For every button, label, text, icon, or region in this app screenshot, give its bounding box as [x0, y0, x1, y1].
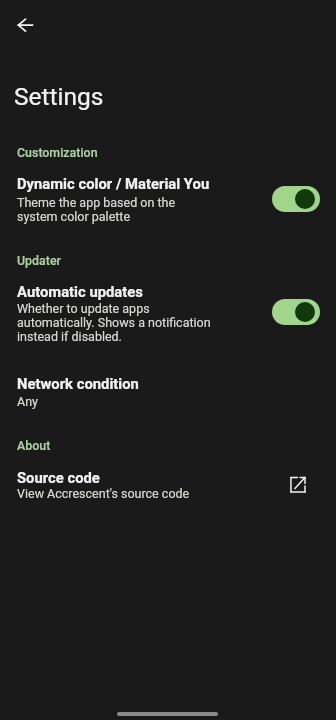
button[interactable]: Network condition	[0, 371, 336, 413]
staticText: Network condition	[17, 375, 139, 392]
staticText: Dynamic color / Material You	[17, 175, 210, 192]
staticText: Theme the app based on the system color …	[17, 196, 176, 224]
staticText: Automatic updates	[17, 283, 143, 300]
staticText: Any	[17, 395, 38, 409]
button[interactable]: Automatic updates	[0, 277, 336, 350]
button[interactable]: Open source code in browser	[283, 470, 312, 499]
staticText: Whether to update apps automatically. Sh…	[17, 302, 211, 344]
staticText: View Accrescent's source code	[17, 487, 190, 501]
button[interactable]: Dynamic color / Material You switch, on	[272, 186, 320, 212]
staticText: About	[17, 438, 51, 453]
button[interactable]: Dynamic color / Material You	[0, 170, 336, 229]
button[interactable]: Navigate back	[8, 8, 41, 41]
button[interactable]: Automatic updates switch, on	[272, 299, 320, 325]
button[interactable]: Source code	[0, 465, 336, 507]
staticText: Customization	[17, 145, 98, 160]
staticText: Settings	[14, 82, 104, 111]
staticText: Updater	[17, 253, 61, 268]
staticText: Source code	[17, 469, 100, 486]
